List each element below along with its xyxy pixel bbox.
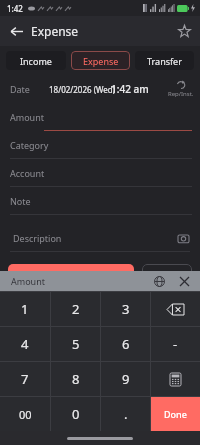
staticText: Income: [20, 55, 52, 67]
staticText: Category: [10, 139, 49, 151]
staticText: Account: [10, 167, 45, 179]
button[interactable]: Close keypad: [176, 273, 192, 289]
button[interactable]: Amount: [0, 103, 200, 131]
button[interactable]: Back: [4, 19, 28, 43]
button[interactable]: 4: [0, 327, 50, 361]
staticText: 0: [72, 405, 80, 423]
staticText: Note: [10, 195, 31, 207]
staticText: .: [124, 405, 128, 423]
button[interactable]: 8: [51, 362, 100, 396]
button[interactable]: Expense: [71, 51, 130, 70]
staticText: Continue: [150, 273, 185, 284]
staticText: Expense: [83, 55, 119, 67]
button[interactable]: Income: [6, 51, 66, 70]
button[interactable]: Account: [0, 159, 200, 187]
staticText: Description: [13, 232, 62, 244]
button[interactable]: Calculator: [151, 362, 200, 396]
staticText: -: [173, 335, 178, 353]
button[interactable]: Repeat / Installment: [168, 80, 194, 98]
staticText: 1: [21, 300, 29, 318]
staticText: Amount: [10, 111, 44, 123]
button[interactable]: 7: [0, 362, 50, 396]
button[interactable]: Date: [0, 75, 200, 103]
staticText: Done: [164, 408, 187, 420]
button[interactable]: Done: [151, 397, 200, 431]
button[interactable]: -: [151, 327, 200, 361]
staticText: Date: [10, 83, 30, 95]
button[interactable]: Change language: [151, 273, 167, 289]
button[interactable]: Backspace: [151, 292, 200, 326]
button[interactable]: Favorite: [172, 19, 196, 43]
button[interactable]: 00: [0, 397, 50, 431]
staticText: 00: [19, 407, 32, 422]
staticText: Rep/Inst.: [168, 90, 194, 98]
button[interactable]: 0: [51, 397, 100, 431]
staticText: Transfer: [147, 55, 182, 67]
button[interactable]: .: [101, 397, 150, 431]
staticText: 7: [21, 370, 29, 388]
button[interactable]: Continue: [142, 264, 192, 292]
button[interactable]: Description: [0, 225, 200, 251]
staticText: 5: [72, 335, 80, 353]
staticText: 2: [72, 300, 80, 318]
staticText: 1:42: [7, 3, 23, 14]
button[interactable]: 1: [0, 292, 50, 326]
button[interactable]: 9: [101, 362, 150, 396]
button[interactable]: Save: [8, 264, 134, 292]
staticText: 4: [21, 335, 29, 353]
staticText: 1:42 am: [111, 82, 149, 96]
staticText: 6: [122, 335, 130, 353]
button[interactable]: 2: [51, 292, 100, 326]
staticText: 18/02/2026 (Wed): [49, 84, 116, 95]
button[interactable]: Transfer: [135, 51, 194, 70]
button[interactable]: Note: [0, 187, 200, 215]
staticText: 3: [122, 300, 130, 318]
button[interactable]: Add photo: [174, 229, 192, 247]
button[interactable]: 6: [101, 327, 150, 361]
staticText: 8: [72, 370, 80, 388]
button[interactable]: Category: [0, 131, 200, 159]
button[interactable]: 3: [101, 292, 150, 326]
staticText: Expense: [31, 23, 79, 39]
staticText: 9: [122, 370, 130, 388]
button[interactable]: 5: [51, 327, 100, 361]
staticText: Amount: [11, 275, 45, 287]
